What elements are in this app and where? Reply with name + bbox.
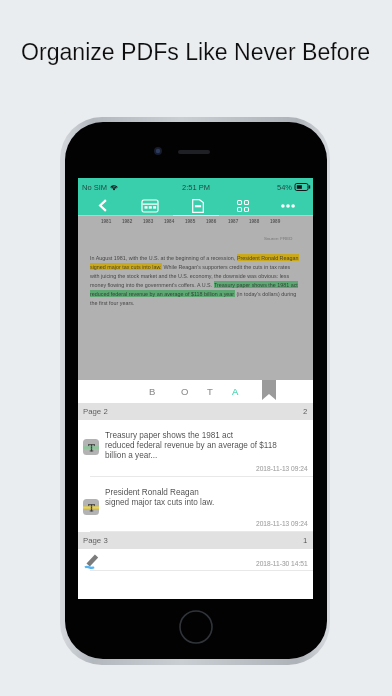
staticText: No SIM bbox=[82, 183, 108, 191]
staticText: money flowing into the government's coff… bbox=[90, 282, 214, 288]
staticText: B bbox=[149, 386, 156, 397]
staticText: President Ronald Reagan bbox=[237, 255, 299, 261]
staticText: signed major tax cuts into law. bbox=[90, 264, 162, 270]
staticText: 1984 bbox=[164, 219, 175, 224]
staticText: Source: FRED bbox=[264, 236, 293, 241]
staticText: (in today's dollars) during bbox=[235, 291, 297, 297]
button[interactable]: T bbox=[201, 380, 219, 403]
staticText: 2018-11-13 09:24 bbox=[256, 465, 308, 472]
staticText: A bbox=[232, 386, 239, 397]
staticText: While Reagan's supporters credit the cut… bbox=[162, 264, 291, 270]
staticText: T bbox=[207, 386, 213, 397]
staticText: Page 3 bbox=[83, 536, 108, 545]
button[interactable]: More options bbox=[276, 195, 300, 216]
button[interactable]: Back bbox=[91, 195, 115, 216]
button[interactable]: Grid bbox=[232, 195, 254, 216]
staticText: Treasury paper shows the 1981 act bbox=[214, 282, 298, 288]
button[interactable]: Document bbox=[187, 195, 209, 216]
staticText: 2018-11-30 14:51 bbox=[256, 560, 308, 567]
button[interactable]: 2018-11-30 14:51 bbox=[78, 549, 313, 571]
staticText: 1988 bbox=[249, 219, 260, 224]
staticText: the first four years. bbox=[90, 300, 135, 306]
staticText: 1981 bbox=[101, 219, 112, 224]
staticText: President Ronald Reagan signed major tax… bbox=[105, 488, 215, 507]
button[interactable]: Treasury paper shows the 1981 act reduce… bbox=[78, 420, 313, 477]
staticText: Page 2 bbox=[83, 407, 108, 416]
staticText: In August 1981, with the U.S. at the beg… bbox=[90, 255, 237, 261]
staticText: Treasury paper shows the 1981 act reduce… bbox=[105, 431, 277, 460]
button[interactable]: A bbox=[226, 380, 244, 403]
staticText: 1987 bbox=[228, 219, 239, 224]
staticText: reduced federal revenue by an average of… bbox=[90, 291, 235, 297]
staticText: Organize PDFs Like Never Before bbox=[21, 39, 371, 65]
staticText: 1982 bbox=[122, 219, 133, 224]
button[interactable]: President Ronald Reagan signed major tax… bbox=[78, 477, 313, 532]
button[interactable]: Pages bbox=[139, 195, 161, 216]
staticText: 2:51 PM bbox=[182, 183, 210, 191]
staticText: 1983 bbox=[143, 219, 154, 224]
staticText: 2 bbox=[303, 407, 308, 416]
staticText: 2018-11-13 09:24 bbox=[256, 520, 308, 527]
staticText: 1 bbox=[303, 536, 308, 545]
button[interactable]: O bbox=[176, 380, 194, 403]
staticText: 54% bbox=[277, 183, 293, 191]
staticText: 1986 bbox=[206, 219, 217, 224]
staticText: with juicing the stock market and the U.… bbox=[90, 273, 290, 279]
staticText: 1989 bbox=[270, 219, 281, 224]
button[interactable]: B bbox=[143, 380, 161, 403]
staticText: 1985 bbox=[185, 219, 196, 224]
staticText: O bbox=[181, 386, 189, 397]
